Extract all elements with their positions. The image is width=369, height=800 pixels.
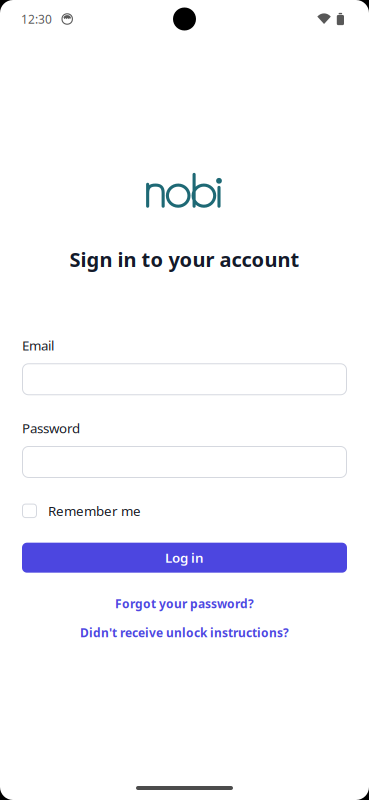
button[interactable]: Log in [22,543,347,573]
staticText: Password [22,419,80,437]
button[interactable]: Didn't receive unlock instructions? [80,625,289,640]
button[interactable]: Remember me [22,502,347,520]
staticText: Sign in to your account [69,246,299,273]
button[interactable]: Forgot your password? [115,596,254,612]
staticText: Log in [165,549,204,566]
staticText: Remember me [48,502,141,520]
staticText: Email [22,337,54,354]
staticText: Didn't receive unlock instructions? [80,625,289,640]
staticText: Forgot your password? [115,596,254,612]
staticText: 12:30 [21,11,52,27]
